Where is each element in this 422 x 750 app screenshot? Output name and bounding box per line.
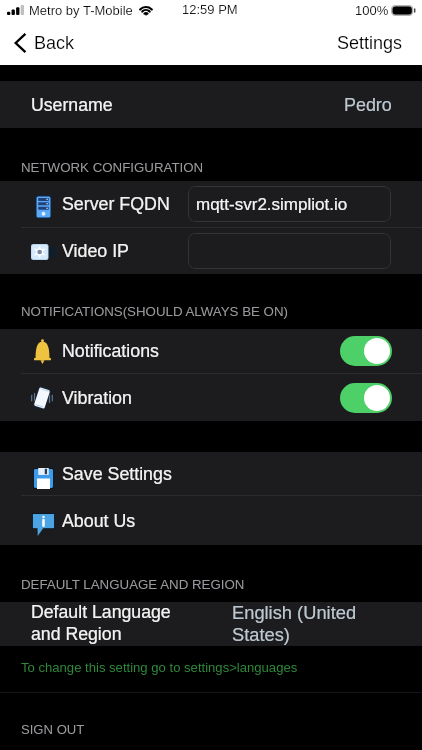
button[interactable]: Notifications [0, 329, 422, 373]
button[interactable]: About Us [0, 496, 422, 545]
button[interactable]: Video IP [188, 233, 391, 269]
staticText: 100% [355, 3, 389, 18]
staticText: Notifications [62, 341, 159, 361]
button[interactable]: Server FQDN [188, 186, 391, 222]
staticText: DEFAULT LANGUAGE AND REGION [21, 577, 245, 592]
staticText: Default Language and Region [31, 602, 186, 643]
staticText: Username [31, 95, 113, 115]
staticText: English (United States) [232, 602, 387, 645]
staticText: Vibration [62, 388, 132, 408]
button[interactable]: Save Settings [0, 452, 422, 495]
staticText: Metro by T-Mobile [29, 3, 133, 18]
staticText: 12:59 PM [182, 2, 238, 17]
staticText: Video IP [62, 241, 129, 261]
button[interactable]: Username [0, 81, 422, 128]
button[interactable]: Toggle Notifications [340, 336, 392, 366]
button[interactable]: Vibration [0, 374, 422, 421]
staticText: mqtt-svr2.simpliot.io [196, 195, 348, 214]
staticText: Settings [337, 33, 403, 53]
staticText: About Us [62, 511, 136, 531]
staticText: To change this setting go to settings>la… [21, 660, 298, 675]
button[interactable]: Default Language and Region [0, 602, 422, 646]
staticText: NETWORK CONFIGURATION [21, 160, 204, 175]
staticText: Pedro [344, 95, 392, 115]
staticText: SIGN OUT [21, 722, 85, 737]
button[interactable]: Back [0, 27, 85, 59]
staticText: Save Settings [62, 464, 172, 484]
staticText: Back [34, 33, 75, 53]
staticText: NOTIFICATIONS(SHOULD ALWAYS BE ON) [21, 304, 288, 319]
button[interactable]: Toggle Vibration [340, 383, 392, 413]
staticText: Server FQDN [62, 194, 170, 214]
button[interactable]: Settings [321, 27, 422, 59]
